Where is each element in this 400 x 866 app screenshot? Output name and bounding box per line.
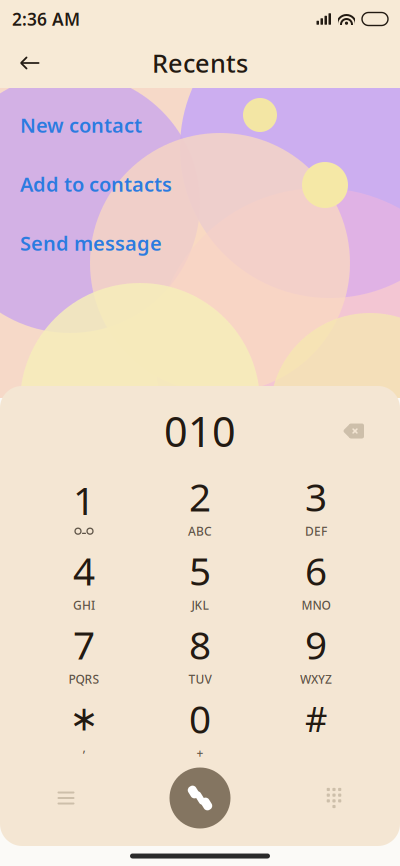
staticText: Add to contacts [20,171,172,197]
staticText: Recents [152,46,248,80]
staticText: Send message [20,230,162,256]
staticText: 2:36 AM [12,7,80,30]
staticText: ABC [188,523,212,539]
staticText: WXYZ [300,671,332,687]
staticText: PQRS [68,671,99,687]
button[interactable]: New contact [0,103,400,147]
staticText: DEF [305,523,327,539]
staticText: 0 [189,693,211,744]
staticText: 1 [73,474,95,526]
staticText: 7 [73,619,95,670]
staticText: JKL [191,597,208,613]
button[interactable]: Call [164,762,236,834]
staticText: MNO [301,597,330,613]
staticText: 010 [164,404,236,458]
button[interactable]: Call log options [34,766,98,830]
button[interactable]: 5 [142,544,258,614]
staticText: 8 [189,619,211,670]
staticText: 5 [189,545,211,596]
staticText: 3 [305,471,327,522]
button[interactable]: 7 [26,618,142,688]
button[interactable]: 9 [258,618,374,688]
button[interactable]: Add to contacts [0,162,400,206]
staticText: 9 [305,619,327,670]
staticText: 4 [73,545,95,596]
button[interactable]: ∗ [26,692,142,762]
staticText: New contact [20,112,142,138]
staticText: # [305,695,327,741]
staticText: ∗ [69,699,98,738]
staticText: + [196,745,203,761]
button[interactable]: # [258,692,374,762]
button[interactable]: 0 [142,692,258,762]
button[interactable]: Hide keypad [302,766,366,830]
button[interactable]: 6 [258,544,374,614]
button[interactable]: 2 [142,470,258,540]
staticText: 2 [189,471,211,522]
staticText: GHI [73,597,95,613]
staticText: 6 [305,545,327,596]
button[interactable]: 8 [142,618,258,688]
button[interactable]: 3 [258,470,374,540]
staticText: TUV [188,671,211,687]
staticText: , [82,739,85,755]
button[interactable]: Back [8,41,52,85]
button[interactable]: 4 [26,544,142,614]
button[interactable]: Delete [328,406,378,456]
button[interactable]: Send message [0,221,400,265]
button[interactable]: 1 [26,470,142,540]
